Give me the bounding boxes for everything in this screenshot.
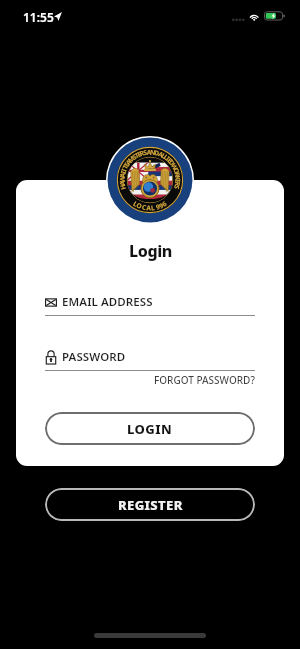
button[interactable]: FORGOT PASSWORD?: [154, 373, 255, 387]
other: Location active: [54, 12, 62, 21]
other: Password: [45, 350, 57, 365]
staticText: FORGOT PASSWORD?: [154, 373, 255, 387]
button[interactable]: REGISTER: [45, 488, 255, 521]
staticText: REGISTER: [118, 496, 183, 514]
staticText: Login: [129, 240, 172, 262]
staticText: PASSWORD: [62, 349, 126, 365]
button[interactable]: Password: [45, 349, 255, 371]
button[interactable]: Email: [45, 294, 255, 316]
other: Email: [45, 295, 57, 310]
button[interactable]: LOGIN: [45, 412, 255, 445]
other: Hawaii Teamsters Local 996 logo: [106, 136, 194, 224]
staticText: EMAIL ADDRESS: [62, 294, 153, 310]
staticText: 11:55: [23, 9, 54, 25]
staticText: LOGIN: [127, 420, 173, 438]
